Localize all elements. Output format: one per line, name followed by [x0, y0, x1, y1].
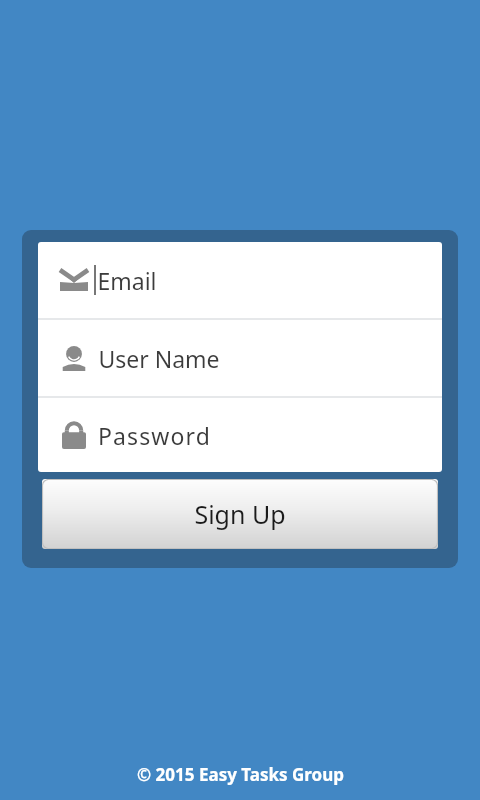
staticText: User Name — [98, 343, 220, 374]
other: User name — [62, 345, 86, 371]
staticText: Email — [97, 265, 157, 296]
button[interactable]: Email — [38, 242, 442, 318]
other: Email — [60, 270, 88, 291]
button[interactable]: Password — [38, 398, 442, 472]
other: Password — [62, 421, 86, 449]
staticText: © 2015 Easy Tasks Group — [137, 763, 344, 786]
button[interactable]: User name — [38, 320, 442, 396]
staticText: Sign Up — [194, 497, 286, 531]
button[interactable]: Sign Up — [42, 479, 438, 549]
staticText: Password — [98, 420, 211, 451]
